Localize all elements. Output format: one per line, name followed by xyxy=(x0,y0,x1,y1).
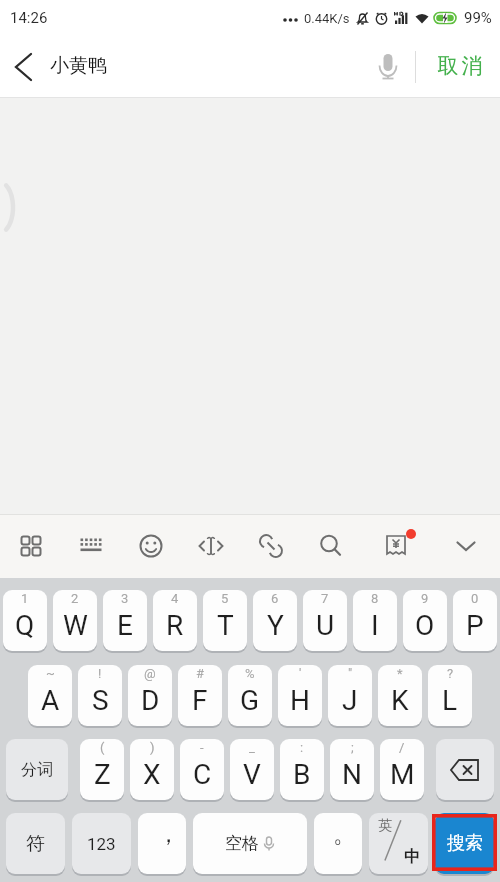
staticText: X xyxy=(143,758,161,791)
button[interactable]: ( xyxy=(80,739,124,800)
button[interactable]: 9 xyxy=(403,590,447,651)
button[interactable]: " xyxy=(328,665,372,726)
button[interactable]: / xyxy=(380,739,424,800)
button[interactable]: ， xyxy=(138,813,186,874)
button[interactable] xyxy=(374,50,402,83)
staticText: W xyxy=(63,609,88,642)
staticText: 99% xyxy=(464,9,492,27)
staticText: E xyxy=(117,609,133,642)
button[interactable]: ? xyxy=(428,665,472,726)
staticText: M xyxy=(390,758,415,791)
staticText: : xyxy=(300,740,304,755)
button[interactable] xyxy=(315,530,347,562)
staticText: 2 xyxy=(71,591,79,606)
staticText: Q xyxy=(15,609,35,642)
button[interactable]: 6 xyxy=(253,590,297,651)
staticText: 5 xyxy=(221,591,229,606)
staticText: U xyxy=(316,609,335,642)
staticText: 符 xyxy=(26,832,45,856)
button[interactable]: 3 xyxy=(103,590,147,651)
staticText: 英 xyxy=(378,817,392,835)
staticText: K xyxy=(391,684,409,717)
button[interactable]: 取消 xyxy=(436,53,484,79)
button[interactable] xyxy=(380,530,412,562)
staticText: - xyxy=(200,740,204,755)
staticText: ， xyxy=(157,820,180,849)
staticText: O xyxy=(415,609,435,642)
staticText: ' xyxy=(299,666,302,681)
button[interactable]: - xyxy=(180,739,224,800)
button[interactable] xyxy=(195,530,227,562)
button[interactable]: 符 xyxy=(6,813,65,874)
button[interactable]: 5 xyxy=(203,590,247,651)
button[interactable]: 搜索 xyxy=(435,813,494,874)
staticText: D xyxy=(141,684,160,717)
button[interactable] xyxy=(15,530,47,562)
button[interactable]: 1 xyxy=(3,590,47,651)
button[interactable]: : xyxy=(280,739,324,800)
staticText: 搜索 xyxy=(447,832,483,855)
staticText: ; xyxy=(351,740,354,755)
button[interactable]: _ xyxy=(230,739,274,800)
staticText: ? xyxy=(447,666,454,681)
staticText: # xyxy=(196,666,205,681)
staticText: 123 xyxy=(87,834,116,854)
staticText: " xyxy=(348,666,353,681)
staticText: ( xyxy=(100,740,105,755)
button[interactable]: # xyxy=(178,665,222,726)
button[interactable] xyxy=(75,530,107,562)
button[interactable]: 123 xyxy=(72,813,131,874)
button[interactable] xyxy=(135,530,167,562)
staticText: J xyxy=(342,684,358,717)
button[interactable]: 2 xyxy=(53,590,97,651)
button[interactable]: 4 xyxy=(153,590,197,651)
staticText: C xyxy=(193,758,212,791)
button[interactable]: 7 xyxy=(303,590,347,651)
staticText: P xyxy=(466,609,484,642)
staticText: 0.44K/s xyxy=(304,11,350,26)
button[interactable] xyxy=(450,530,482,562)
button[interactable]: * xyxy=(378,665,422,726)
staticText: % xyxy=(245,666,255,681)
button[interactable] xyxy=(436,739,494,800)
staticText: 3 xyxy=(121,591,129,606)
button[interactable] xyxy=(255,530,287,562)
button[interactable]: 英 xyxy=(369,813,428,874)
staticText: I xyxy=(371,609,379,642)
staticText: F xyxy=(192,684,208,717)
staticText: ! xyxy=(98,666,102,681)
button[interactable]: ) xyxy=(130,739,174,800)
button[interactable] xyxy=(8,50,42,84)
staticText: H xyxy=(290,684,310,717)
button[interactable]: ' xyxy=(278,665,322,726)
button[interactable]: @ xyxy=(128,665,172,726)
staticText: 4 xyxy=(171,591,179,606)
button[interactable]: ! xyxy=(78,665,122,726)
staticText: Z xyxy=(94,758,111,791)
staticText: G xyxy=(240,684,260,717)
button[interactable]: % xyxy=(228,665,272,726)
staticText: S xyxy=(92,684,109,717)
staticText: V xyxy=(243,758,261,791)
staticText: 1 xyxy=(21,591,29,606)
staticText: 小黄鸭 xyxy=(50,54,107,78)
staticText: 空格 xyxy=(225,833,259,854)
button[interactable]: 空格 xyxy=(193,813,307,874)
staticText: * xyxy=(397,666,403,681)
button[interactable]: ; xyxy=(330,739,374,800)
staticText: / xyxy=(399,740,405,755)
staticText: L xyxy=(442,684,458,717)
staticText: 0 xyxy=(471,591,479,606)
button[interactable]: 分词 xyxy=(6,739,68,800)
button[interactable]: 0 xyxy=(453,590,497,651)
button[interactable]: 8 xyxy=(353,590,397,651)
staticText: N xyxy=(342,758,362,791)
staticText: 9 xyxy=(421,591,429,606)
staticText: 分词 xyxy=(21,760,53,780)
staticText: ~ xyxy=(46,666,55,681)
staticText: 8 xyxy=(371,591,379,606)
staticText: T xyxy=(217,609,234,642)
button[interactable]: ~ xyxy=(28,665,72,726)
staticText: 中 xyxy=(404,847,420,867)
button[interactable]: 。 xyxy=(314,813,362,874)
